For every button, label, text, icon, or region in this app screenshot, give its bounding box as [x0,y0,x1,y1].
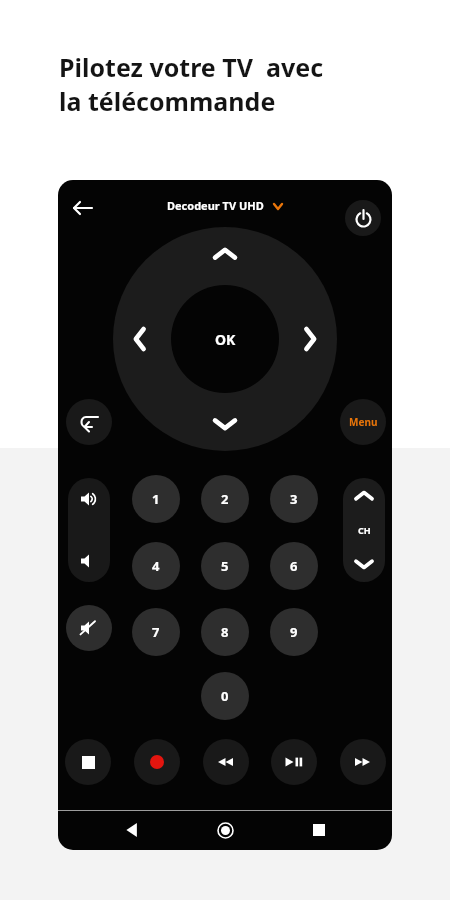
staticText: 8 [221,623,229,641]
staticText: 4 [152,557,160,575]
button[interactable]: Lecture / Pause [271,739,317,785]
button[interactable]: 6 [270,542,318,590]
button[interactable]: Volume - [68,540,110,582]
button[interactable]: Bas [198,397,252,451]
staticText: Pilotez votre TV avec la télécommande [59,50,324,119]
staticText: 3 [290,490,298,508]
button[interactable]: 5 [201,542,249,590]
staticText: 9 [290,623,298,641]
button[interactable]: Retour rapide [203,739,249,785]
button[interactable]: 4 [132,542,180,590]
button[interactable]: Enregistrer [134,739,180,785]
button[interactable]: Gauche [113,312,167,366]
button[interactable]: Droite [283,312,337,366]
staticText: 6 [290,557,298,575]
staticText: 5 [221,557,229,575]
button[interactable]: 7 [132,608,180,656]
button[interactable]: Haut [198,227,252,281]
button[interactable]: Accueil [205,810,245,850]
button[interactable]: 9 [270,608,318,656]
button[interactable]: Retour arrière [66,399,112,445]
staticText: Decodeur TV UHD [167,198,264,213]
button[interactable]: Muet [66,605,112,651]
button[interactable]: 8 [201,608,249,656]
staticText: OK [215,330,236,349]
staticText: 1 [152,490,160,508]
button[interactable]: Marche / Arrêt [345,200,381,236]
button[interactable]: Menu [340,399,386,445]
staticText: 0 [221,687,229,705]
staticText: 7 [152,623,160,641]
button[interactable]: 1 [132,475,180,523]
button[interactable]: Chaîne + [343,478,385,514]
staticText: Menu [349,415,378,429]
button[interactable]: Applications récentes [299,810,339,850]
button[interactable]: Retour [112,810,152,850]
button[interactable]: 3 [270,475,318,523]
button[interactable]: Retour [62,188,102,228]
button[interactable]: OK [171,285,279,393]
button[interactable]: Decodeur TV UHD [163,196,287,215]
button[interactable]: Avance rapide [340,739,386,785]
button[interactable]: Chaîne - [343,546,385,582]
button[interactable]: 2 [201,475,249,523]
staticText: 2 [221,490,229,508]
button[interactable]: Volume + [68,478,110,520]
button[interactable]: Stop [65,739,111,785]
staticText: CH [358,524,371,536]
button[interactable]: 0 [201,672,249,720]
